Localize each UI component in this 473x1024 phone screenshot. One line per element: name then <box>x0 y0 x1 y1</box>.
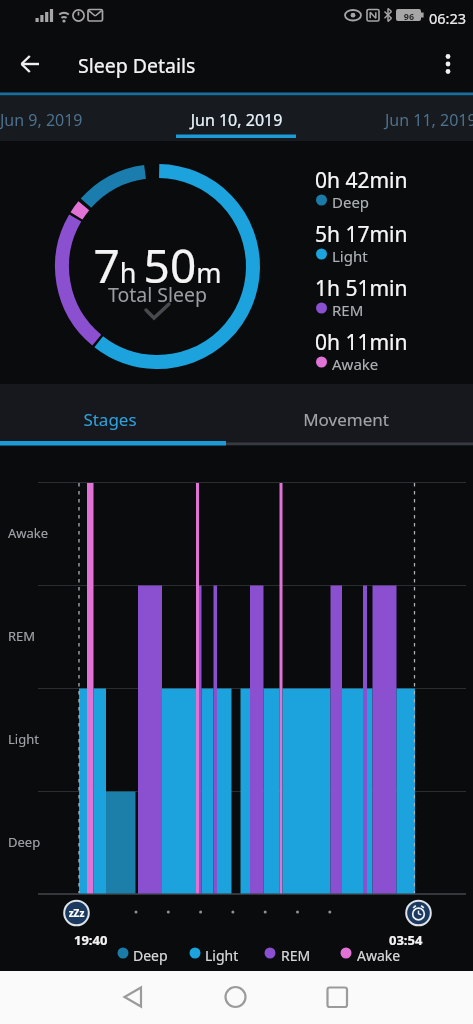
staticText: Movement <box>236 408 456 431</box>
staticText: 19:40 <box>74 931 108 949</box>
staticText: 03:54 <box>389 931 423 949</box>
staticText: REM <box>332 300 364 320</box>
staticText: Awake <box>357 946 401 965</box>
staticText: Deep <box>8 833 41 851</box>
staticText: Light <box>332 246 368 266</box>
staticText: Sleep Details <box>78 52 196 79</box>
staticText: zZz <box>62 906 91 920</box>
staticText: 1h 51min <box>315 274 408 303</box>
staticText: 7h 50m <box>52 234 263 297</box>
staticText: 06:23 <box>429 8 467 28</box>
staticText: 96 <box>398 10 420 22</box>
staticText: REM <box>281 946 311 965</box>
staticText: Deep <box>332 192 370 212</box>
staticText: Deep <box>133 946 168 965</box>
staticText: Total Sleep <box>52 281 263 308</box>
staticText: Jun 9, 2019 <box>0 109 83 131</box>
staticText: 0h 42min <box>315 166 408 195</box>
staticText: Awake <box>332 354 379 374</box>
staticText: Stages <box>0 408 220 431</box>
staticText: Light <box>8 730 39 748</box>
staticText: REM <box>8 627 36 645</box>
staticText: Jun 10, 2019 <box>0 109 473 131</box>
staticText: Awake <box>8 524 49 542</box>
staticText: Jun 11, 2019 <box>385 109 473 131</box>
staticText: 5h 17min <box>315 220 408 249</box>
staticText: 0h 11min <box>315 328 408 357</box>
staticText: Light <box>205 946 239 965</box>
